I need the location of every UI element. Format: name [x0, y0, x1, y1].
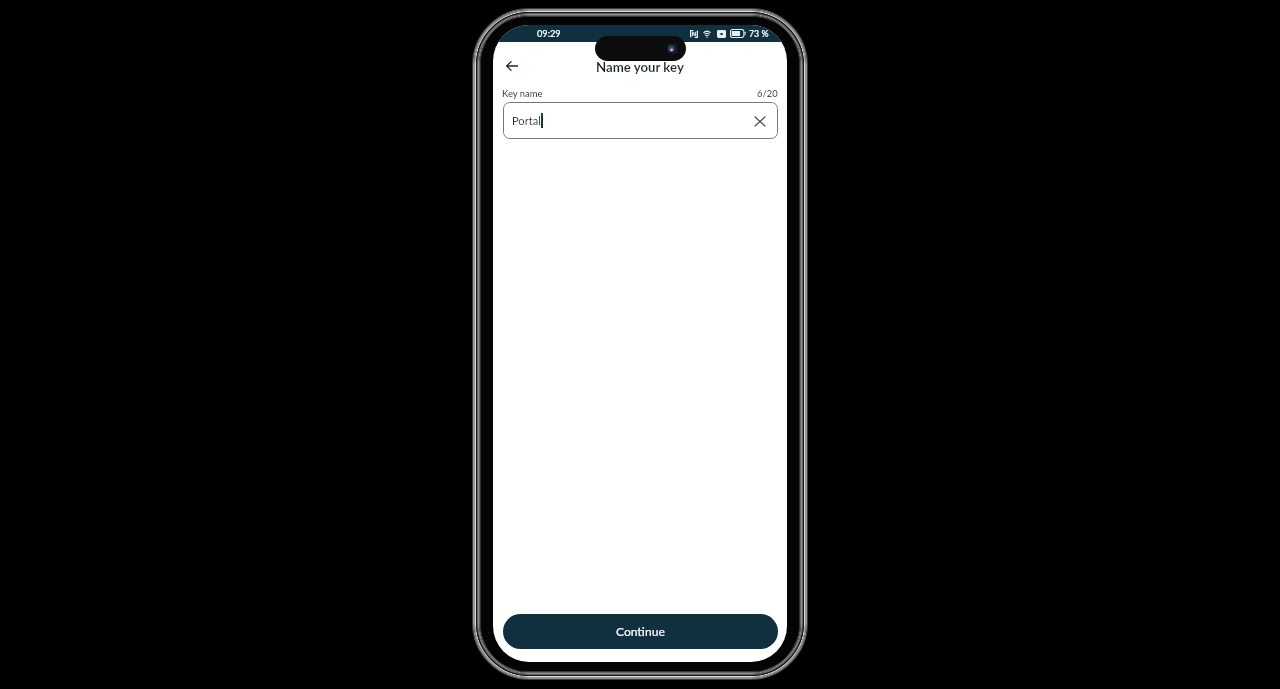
staticText: 73 %: [749, 28, 769, 39]
staticText: Portal: [512, 114, 541, 127]
staticText: 09:29: [537, 28, 561, 39]
staticText: Key name: [502, 88, 543, 99]
button[interactable]: Back: [500, 54, 524, 78]
staticText: Name your key: [596, 59, 684, 75]
button[interactable]: Clear text: [751, 112, 769, 130]
staticText: Continue: [616, 624, 665, 639]
button[interactable]: Portal: [503, 102, 778, 139]
button[interactable]: Continue: [503, 614, 778, 649]
staticText: 6/20: [757, 88, 778, 99]
